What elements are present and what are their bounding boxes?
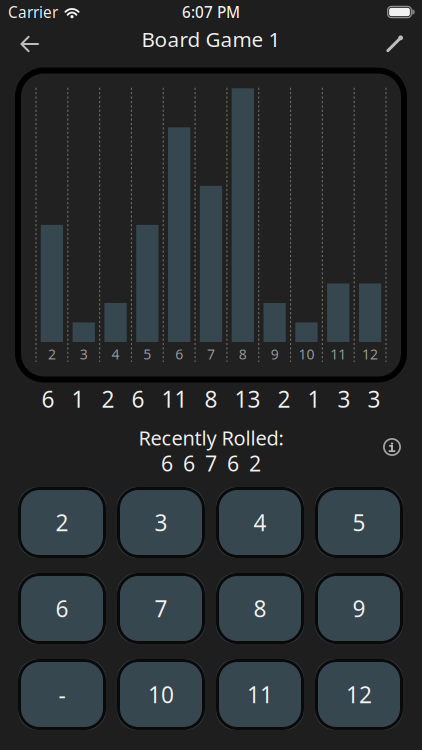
- staticText: 2: [48, 345, 56, 363]
- staticText: 9: [271, 345, 279, 363]
- button[interactable]: 9: [315, 573, 403, 644]
- staticText: 6: [131, 384, 144, 414]
- button[interactable]: Info: [373, 428, 411, 466]
- staticText: 3: [367, 384, 380, 414]
- staticText: 4: [253, 507, 266, 537]
- staticText: 7: [207, 345, 215, 363]
- staticText: 2: [55, 507, 68, 537]
- button[interactable]: 8: [216, 573, 304, 644]
- button[interactable]: 3: [117, 487, 205, 558]
- staticText: 3: [154, 507, 167, 537]
- button[interactable]: 5: [315, 487, 403, 558]
- staticText: 6: [161, 449, 173, 477]
- staticText: 13: [234, 384, 260, 414]
- staticText: 2: [101, 384, 114, 414]
- staticText: -: [58, 679, 65, 709]
- staticText: 6:07 PM: [182, 2, 240, 22]
- staticText: 1: [307, 384, 320, 414]
- staticText: 11: [247, 679, 273, 709]
- button[interactable]: Back: [0, 24, 51, 64]
- staticText: 5: [143, 345, 151, 363]
- staticText: 8: [253, 593, 266, 623]
- staticText: 6: [183, 449, 195, 477]
- staticText: Recently Rolled:: [138, 425, 283, 451]
- staticText: 6: [175, 345, 183, 363]
- staticText: 11: [330, 345, 346, 363]
- staticText: 2: [249, 449, 261, 477]
- button[interactable]: 11: [216, 659, 304, 730]
- button[interactable]: 12: [315, 659, 403, 730]
- staticText: 12: [362, 345, 378, 363]
- staticText: 3: [80, 345, 88, 363]
- staticText: 4: [111, 345, 119, 363]
- button[interactable]: 2: [18, 487, 106, 558]
- button[interactable]: Edit: [374, 24, 422, 64]
- staticText: Board Game 1: [141, 25, 280, 53]
- staticText: 11: [161, 384, 187, 414]
- staticText: 1: [71, 384, 84, 414]
- staticText: 5: [352, 507, 365, 537]
- staticText: 8: [239, 345, 247, 363]
- staticText: 6: [41, 384, 54, 414]
- staticText: 6: [55, 593, 68, 623]
- staticText: 2: [277, 384, 290, 414]
- staticText: 9: [352, 593, 365, 623]
- staticText: 7: [154, 593, 167, 623]
- button[interactable]: 4: [216, 487, 304, 558]
- staticText: 10: [298, 345, 314, 363]
- button[interactable]: 6: [18, 573, 106, 644]
- staticText: 12: [346, 679, 372, 709]
- button[interactable]: 10: [117, 659, 205, 730]
- staticText: Carrier: [8, 2, 58, 22]
- staticText: 6: [227, 449, 239, 477]
- staticText: 7: [205, 449, 217, 477]
- staticText: 8: [204, 384, 217, 414]
- button[interactable]: -: [18, 659, 106, 730]
- staticText: 3: [337, 384, 350, 414]
- button[interactable]: 7: [117, 573, 205, 644]
- staticText: 10: [148, 679, 174, 709]
